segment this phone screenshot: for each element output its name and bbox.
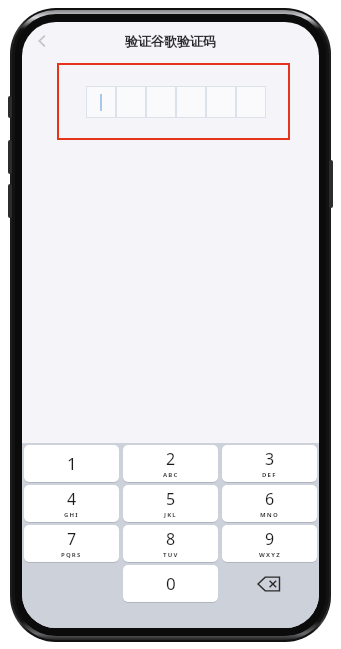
button[interactable]: Back (26, 25, 58, 57)
staticText: JKL (164, 511, 177, 519)
staticText: 5 (166, 488, 176, 510)
button[interactable] (86, 86, 266, 118)
staticText: 1 (67, 452, 77, 475)
button[interactable]: 6 (222, 485, 317, 522)
staticText: DEF (262, 471, 277, 479)
staticText: TUV (163, 551, 179, 559)
staticText: ABC (163, 471, 179, 479)
staticText: MNO (260, 511, 279, 519)
button[interactable]: Backspace (220, 565, 319, 602)
staticText: 4 (67, 488, 77, 510)
staticText: 7 (67, 528, 77, 550)
button[interactable]: 8 (123, 525, 218, 562)
button[interactable]: 4 (24, 485, 119, 522)
button[interactable]: 9 (222, 525, 317, 562)
staticText: PQRS (61, 551, 82, 559)
button[interactable]: 0 (123, 565, 218, 602)
staticText: 3 (265, 448, 275, 470)
button[interactable]: 2 (123, 445, 218, 482)
staticText: 6 (265, 488, 275, 510)
staticText: 8 (166, 528, 176, 550)
staticText: 2 (166, 448, 176, 470)
staticText: 0 (166, 572, 176, 595)
button[interactable]: 7 (24, 525, 119, 562)
staticText: GHI (64, 511, 79, 519)
button[interactable]: 5 (123, 485, 218, 522)
staticText: 验证谷歌验证码 (125, 33, 216, 49)
button[interactable]: 1 (24, 445, 119, 482)
button[interactable]: 3 (222, 445, 317, 482)
staticText: WXYZ (259, 551, 281, 559)
staticText: 9 (265, 528, 275, 550)
